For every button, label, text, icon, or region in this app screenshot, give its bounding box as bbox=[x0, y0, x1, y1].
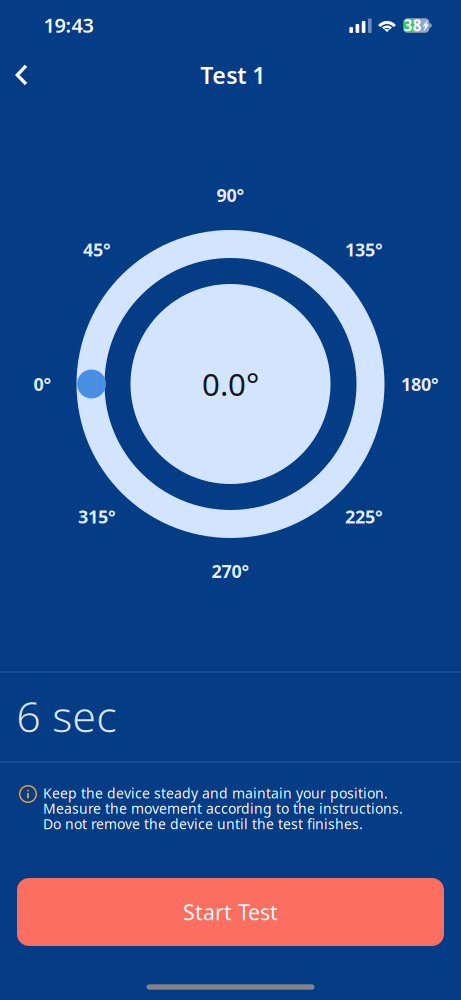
staticText: 45° bbox=[83, 237, 111, 262]
staticText: 0.0° bbox=[202, 363, 259, 405]
staticText: Measure the movement according to the in… bbox=[43, 799, 403, 818]
button[interactable]: Back bbox=[1, 53, 45, 97]
staticText: 6 sec bbox=[16, 686, 116, 745]
staticText: 135° bbox=[345, 237, 383, 262]
staticText: Do not remove the device until the test … bbox=[43, 814, 363, 833]
staticText: 225° bbox=[345, 504, 383, 529]
staticText: 90° bbox=[216, 183, 244, 207]
button[interactable]: Start Test bbox=[17, 878, 444, 946]
staticText: 270° bbox=[211, 559, 249, 583]
staticText: 38 bbox=[404, 15, 422, 36]
staticText: Start Test bbox=[183, 897, 278, 927]
staticText: 19:43 bbox=[43, 11, 93, 39]
staticText: 0° bbox=[33, 372, 51, 396]
staticText: 315° bbox=[78, 504, 116, 529]
staticText: 180° bbox=[401, 372, 439, 396]
staticText: Test 1 bbox=[200, 59, 265, 91]
staticText: Keep the device steady and maintain your… bbox=[43, 783, 388, 802]
